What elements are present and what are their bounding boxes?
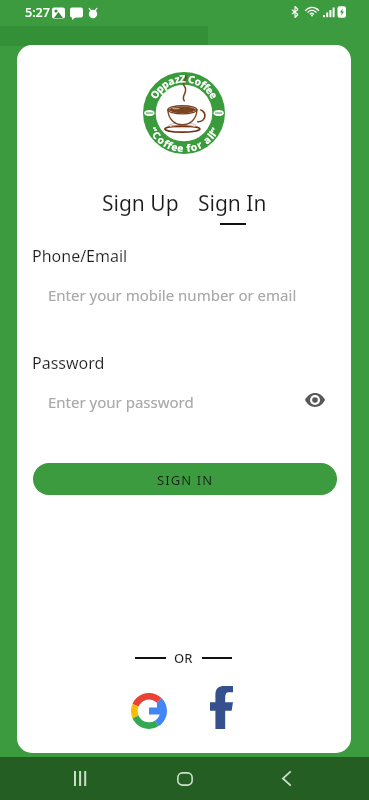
- button[interactable]: Recents: [50, 757, 111, 800]
- button[interactable]: Sign Up: [96, 186, 185, 221]
- staticText: Sign In: [198, 189, 267, 218]
- staticText: Password: [32, 352, 105, 374]
- button[interactable]: Enter your password: [33, 387, 335, 421]
- button[interactable]: Show password: [298, 383, 332, 417]
- button[interactable]: Sign in with Google: [129, 691, 169, 731]
- button[interactable]: Enter your mobile number or email: [33, 280, 335, 314]
- staticText: Enter your mobile number or email: [48, 285, 297, 305]
- button[interactable]: SIGN IN: [33, 463, 337, 495]
- staticText: 5:27: [25, 4, 50, 21]
- staticText: SIGN IN: [157, 471, 214, 489]
- button[interactable]: Sign in with Facebook: [200, 681, 242, 733]
- staticText: Sign Up: [102, 189, 179, 218]
- staticText: Phone/Email: [32, 245, 128, 267]
- button[interactable]: Home: [154, 757, 215, 800]
- button[interactable]: Sign In: [192, 186, 273, 228]
- button[interactable]: Back: [256, 757, 317, 800]
- staticText: OR: [174, 649, 193, 667]
- staticText: Enter your password: [48, 392, 194, 412]
